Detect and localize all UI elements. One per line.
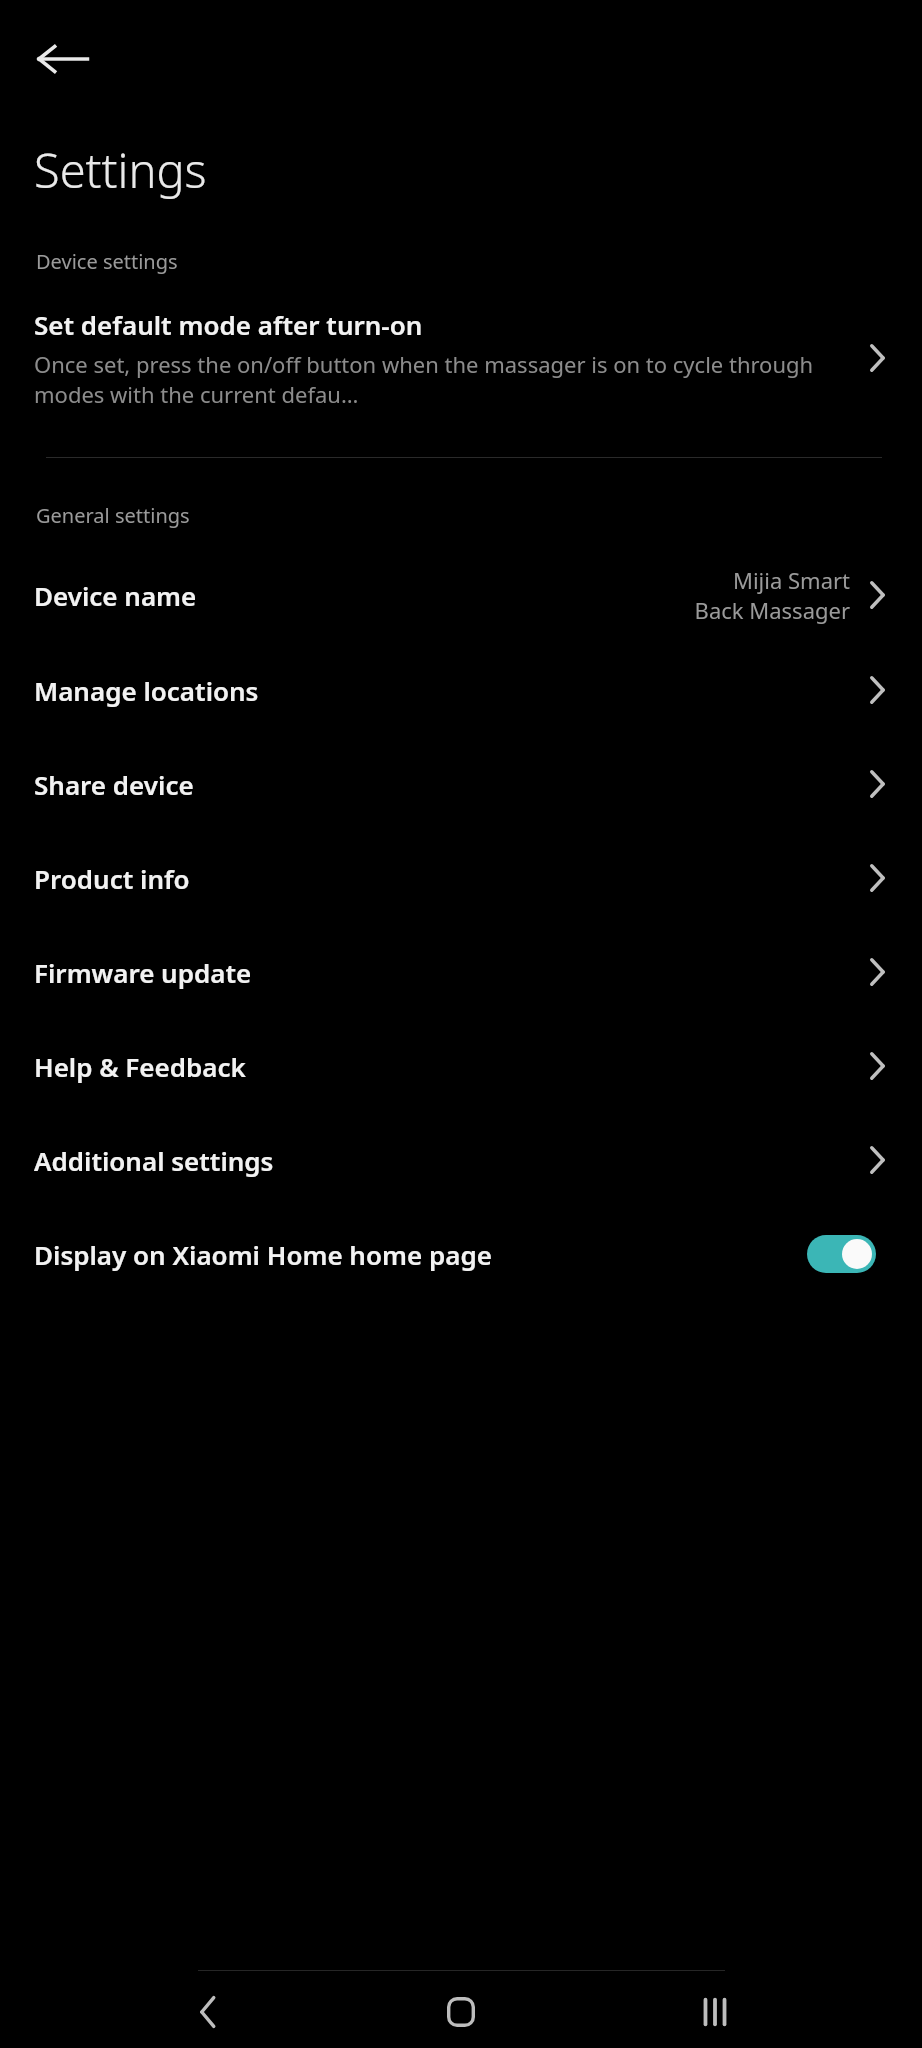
staticText: Device name [34,578,197,613]
staticText: Share device [34,767,194,802]
button[interactable]: Share device [0,737,922,831]
button[interactable]: Manage locations [0,643,922,737]
button[interactable]: Recent apps [669,1979,761,2045]
button[interactable]: Device name [0,547,922,643]
staticText: Manage locations [34,673,259,708]
staticText: Additional settings [34,1143,274,1178]
button[interactable]: Back [162,1979,254,2045]
staticText: Firmware update [34,955,252,990]
button[interactable]: Help & Feedback [0,1019,922,1113]
staticText: Mijia Smart Back Massager [694,565,850,625]
button[interactable]: Display on Xiaomi Home home page toggle [807,1235,876,1273]
button[interactable]: Set default mode after turn-on [0,307,922,409]
button[interactable]: Product info [0,831,922,925]
button[interactable]: Display on Xiaomi Home home page [0,1207,922,1301]
button[interactable]: Firmware update [0,925,922,1019]
staticText: General settings [36,502,190,529]
button[interactable]: Additional settings [0,1113,922,1207]
staticText: Display on Xiaomi Home home page [34,1237,492,1272]
staticText: Help & Feedback [34,1049,246,1084]
button[interactable]: Home [415,1979,507,2045]
staticText: Product info [34,861,190,896]
staticText: Once set, press the on/off button when t… [34,349,852,409]
staticText: Device settings [36,248,178,275]
staticText: Set default mode after turn-on [34,307,423,342]
button[interactable]: Back [30,26,96,92]
staticText: Settings [34,138,207,202]
